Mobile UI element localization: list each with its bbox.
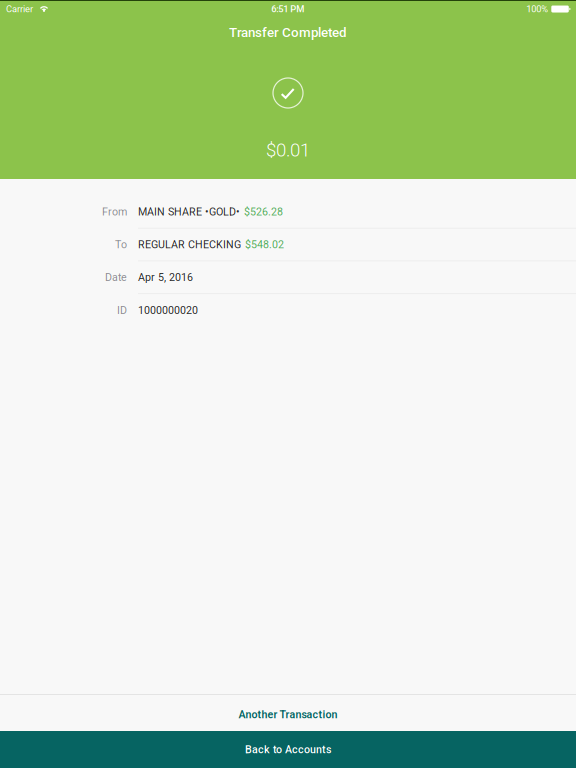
staticText: $526.28 bbox=[244, 206, 283, 218]
staticText: Back to Accounts bbox=[245, 743, 331, 756]
staticText: Date bbox=[105, 271, 127, 283]
staticText: $548.02 bbox=[245, 238, 284, 251]
staticText: 1000000020 bbox=[138, 304, 198, 317]
staticText: Another Transaction bbox=[238, 708, 337, 721]
staticText: 6:51 PM bbox=[271, 3, 304, 14]
staticText: MAIN SHARE •GOLD• bbox=[138, 206, 240, 218]
staticText: To bbox=[115, 238, 127, 251]
staticText: $0.01 bbox=[266, 139, 310, 161]
button[interactable]: Back to Accounts bbox=[0, 731, 576, 768]
staticText: REGULAR CHECKING bbox=[138, 238, 241, 251]
staticText: From bbox=[102, 206, 127, 218]
staticText: Apr 5, 2016 bbox=[138, 271, 193, 283]
staticText: Transfer Completed bbox=[229, 25, 347, 40]
button[interactable]: Another Transaction bbox=[0, 695, 576, 731]
staticText: 100% bbox=[526, 3, 548, 14]
staticText: ID bbox=[117, 304, 127, 317]
staticText: Carrier bbox=[6, 3, 33, 14]
